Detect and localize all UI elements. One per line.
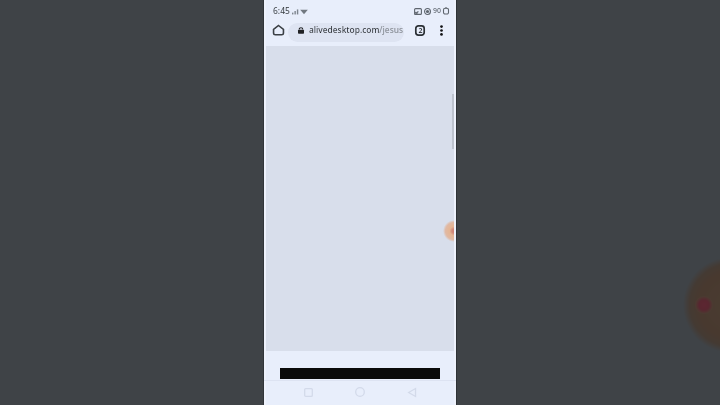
staticText: alivedesktop.com/jesus: [309, 24, 404, 35]
button[interactable]: Back: [402, 382, 422, 402]
staticText: 2: [418, 26, 423, 36]
button[interactable]: Tabs: [411, 21, 429, 39]
button[interactable]: Home: [350, 382, 370, 402]
button[interactable]: Home: [269, 21, 287, 39]
button[interactable]: Floating action: [264, 46, 456, 351]
staticText: 90: [433, 6, 442, 16]
staticText: 6:45: [273, 5, 290, 17]
button[interactable]: Recents: [298, 382, 318, 402]
button[interactable]: More options: [432, 21, 450, 39]
button[interactable]: alivedesktop.com/jesus: [288, 23, 404, 42]
